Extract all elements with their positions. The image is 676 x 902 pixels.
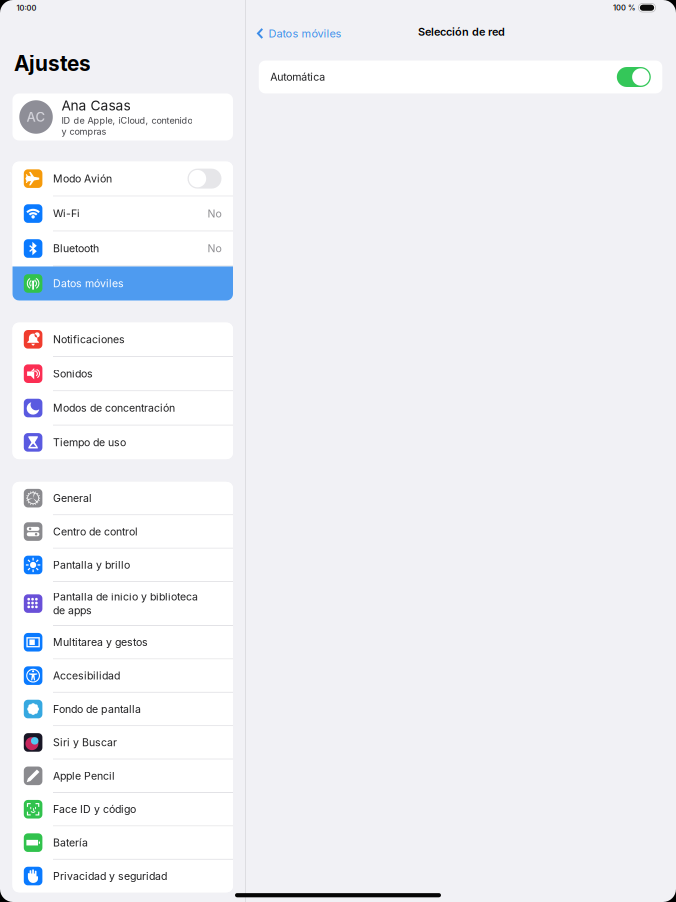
staticText: Ana Casas (61, 97, 130, 114)
button[interactable]: Modo Avión (12, 162, 233, 196)
button[interactable]: General (12, 482, 233, 514)
staticText: Wi-Fi (53, 207, 80, 220)
staticText: Siri y Buscar (53, 736, 117, 749)
staticText: y compras (61, 126, 106, 137)
button[interactable]: Siri y Buscar (12, 726, 233, 759)
button[interactable]: Automática (259, 61, 662, 93)
button[interactable]: Bluetooth (12, 231, 233, 265)
staticText: Bluetooth (53, 242, 99, 255)
staticText: Datos móviles (53, 277, 124, 290)
staticText: Selección de red (418, 25, 505, 38)
staticText: Batería (53, 836, 88, 849)
button[interactable]: Wi-Fi (12, 196, 233, 230)
staticText: Automática (270, 71, 325, 83)
button[interactable]: AC (12, 93, 233, 140)
button[interactable]: Datos móviles (12, 266, 233, 300)
staticText: Modos de concentración (53, 402, 175, 414)
button[interactable]: Face ID y código (12, 793, 233, 825)
staticText: Face ID y código (53, 803, 136, 816)
staticText: General (53, 492, 92, 504)
button[interactable]: Batería (12, 826, 233, 859)
button[interactable]: Centro de control (12, 515, 233, 548)
staticText: Sonidos (53, 367, 93, 380)
staticText: Fondo de pantalla (53, 703, 141, 715)
button[interactable]: Datos móviles (255, 24, 341, 42)
staticText: AC (27, 109, 46, 125)
staticText: Apple Pencil (53, 769, 115, 782)
staticText: Pantalla de inicio y biblioteca (53, 590, 198, 603)
staticText: Pantalla y brillo (53, 559, 130, 571)
staticText: 100 % (613, 3, 635, 12)
button[interactable]: Fondo de pantalla (12, 693, 233, 725)
staticText: Centro de control (53, 525, 138, 538)
staticText: Multitarea y gestos (53, 636, 148, 649)
button[interactable]: Privacidad y seguridad (12, 860, 233, 892)
staticText: No (207, 207, 221, 220)
button[interactable]: Apple Pencil (12, 760, 233, 792)
button[interactable]: Sonidos (12, 357, 233, 390)
staticText: Notificaciones (53, 333, 125, 346)
staticText: Accesibilidad (53, 669, 120, 682)
staticText: Datos móviles (268, 27, 341, 40)
staticText: Ajustes (14, 51, 91, 76)
staticText: de apps (53, 604, 92, 617)
button[interactable]: Pantalla de inicio y biblioteca (12, 582, 233, 625)
staticText: No (207, 242, 221, 255)
staticText: Modo Avión (53, 172, 112, 185)
button[interactable]: Accesibilidad (12, 659, 233, 692)
staticText: ID de Apple, iCloud, contenido (61, 115, 192, 126)
button[interactable]: Multitarea y gestos (12, 626, 233, 658)
staticText: Privacidad y seguridad (53, 870, 167, 882)
button[interactable]: Tiempo de uso (12, 426, 233, 459)
button[interactable]: Modos de concentración (12, 391, 233, 425)
staticText: 10:00 (16, 4, 36, 13)
button[interactable]: Notificaciones (12, 323, 233, 356)
staticText: Tiempo de uso (53, 436, 126, 449)
button[interactable]: Pantalla y brillo (12, 549, 233, 581)
